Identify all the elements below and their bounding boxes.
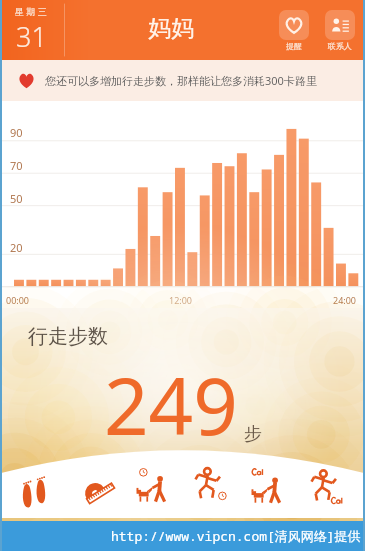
- staticText: 31: [16, 18, 47, 55]
- staticText: 24:00: [333, 294, 357, 306]
- staticText: 行走步数: [28, 324, 108, 349]
- staticText: 249: [104, 352, 238, 458]
- button[interactable]: 步行时间: [130, 462, 178, 510]
- staticText: 您还可以多增加行走步数，那样能让您多消耗300卡路里: [45, 73, 317, 88]
- button[interactable]: 提醒: [277, 10, 311, 51]
- staticText: 提醒: [286, 41, 302, 51]
- staticText: 00:00: [6, 294, 30, 306]
- staticText: 星 期 三: [15, 5, 47, 17]
- staticText: 联系人: [328, 41, 352, 51]
- staticText: 70: [10, 158, 23, 173]
- staticText: 步: [244, 423, 262, 446]
- staticText: 90: [10, 125, 23, 140]
- button[interactable]: 脚步: [14, 462, 62, 510]
- button[interactable]: 星 期 三: [0, 5, 62, 55]
- staticText: 50: [10, 191, 23, 206]
- staticText: 妈妈: [148, 14, 194, 43]
- staticText: 12:00: [169, 294, 193, 306]
- button[interactable]: 跑步时间: [187, 462, 235, 510]
- button[interactable]: 步行卡路里: [245, 462, 293, 510]
- button[interactable]: 您还可以多增加行走步数，那样能让您多消耗300卡路里: [0, 60, 365, 101]
- staticText: 20: [10, 240, 23, 255]
- staticText: http://www.vipcn.com[清风网络]提供: [111, 527, 361, 545]
- button[interactable]: 距离: [72, 462, 120, 510]
- button[interactable]: 跑步卡路里: [303, 462, 351, 510]
- button[interactable]: 联系人: [323, 10, 357, 51]
